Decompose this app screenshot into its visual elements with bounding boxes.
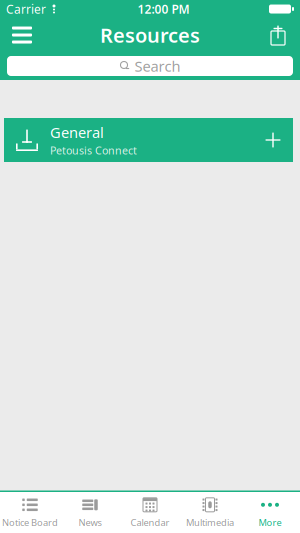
staticText: Carrier	[6, 1, 46, 17]
staticText: Search	[134, 56, 180, 76]
button[interactable]: Share	[256, 18, 300, 52]
staticText: News	[78, 516, 101, 529]
staticText: Petousis Connect	[50, 143, 137, 157]
button[interactable]: News	[60, 492, 120, 533]
button[interactable]: More	[240, 492, 300, 533]
staticText: Notice Board	[2, 516, 58, 529]
staticText: General	[50, 123, 104, 142]
staticText: 12:00 PM	[137, 1, 189, 17]
button[interactable]: General	[4, 118, 293, 162]
button[interactable]: Menu	[0, 18, 44, 52]
button[interactable]: Notice Board	[0, 492, 60, 533]
button[interactable]: Calendar	[120, 492, 180, 533]
staticText: Resources	[100, 22, 200, 48]
staticText: Multimedia	[186, 516, 234, 529]
button[interactable]: Search	[7, 56, 293, 76]
button[interactable]: Multimedia	[180, 492, 240, 533]
staticText: Calendar	[130, 516, 169, 529]
staticText: More	[258, 516, 281, 529]
